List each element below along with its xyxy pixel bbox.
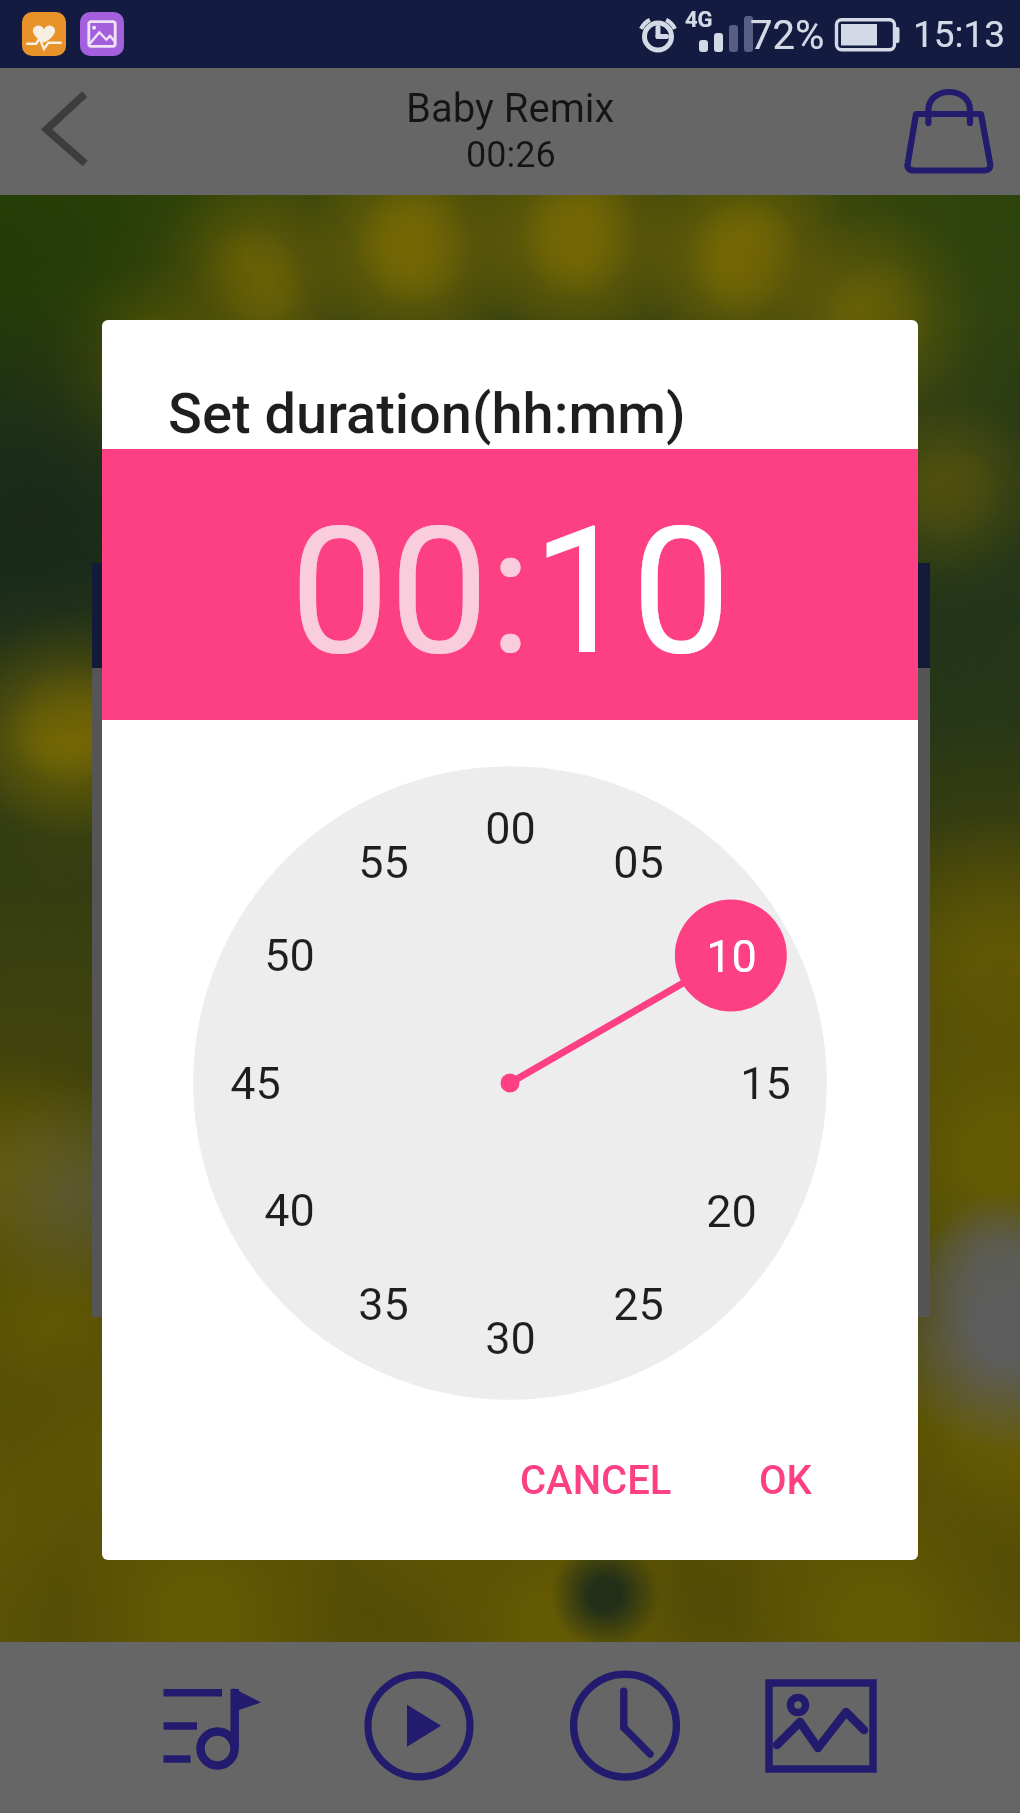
staticText: 25	[613, 1278, 664, 1331]
staticText: 05	[613, 836, 664, 889]
staticText: 20	[706, 1185, 757, 1238]
staticText: 10	[706, 930, 757, 983]
staticText: 15:13	[913, 13, 1006, 56]
staticText: 4G	[685, 7, 713, 33]
staticText: :	[489, 488, 532, 695]
button[interactable]: Gallery	[734, 1642, 906, 1813]
button[interactable]: Playlist	[126, 1642, 298, 1813]
staticText: 15	[740, 1057, 791, 1110]
staticText: 00	[485, 802, 536, 855]
staticText: 30	[485, 1312, 536, 1365]
staticText: Set duration(hh:mm)	[168, 381, 686, 447]
staticText: Baby Remix	[406, 85, 615, 132]
staticText: 35	[358, 1278, 409, 1331]
button[interactable]: OK	[729, 1437, 842, 1523]
staticText: 55	[358, 836, 409, 889]
staticText: 72%	[750, 12, 825, 59]
button[interactable]: Shopping bag	[890, 68, 1008, 195]
button[interactable]: Timer	[541, 1642, 713, 1813]
staticText: OK	[759, 1457, 812, 1504]
button[interactable]: CANCEL	[502, 1437, 689, 1523]
button[interactable]: Play	[333, 1642, 505, 1813]
staticText: 40	[264, 1184, 315, 1237]
staticText: 10	[532, 488, 731, 695]
staticText: 00:26	[466, 134, 556, 176]
staticText: 00	[290, 488, 489, 695]
staticText: 50	[264, 929, 315, 982]
button[interactable]: Back	[8, 68, 124, 195]
staticText: CANCEL	[520, 1457, 672, 1504]
staticText: 45	[230, 1057, 281, 1110]
